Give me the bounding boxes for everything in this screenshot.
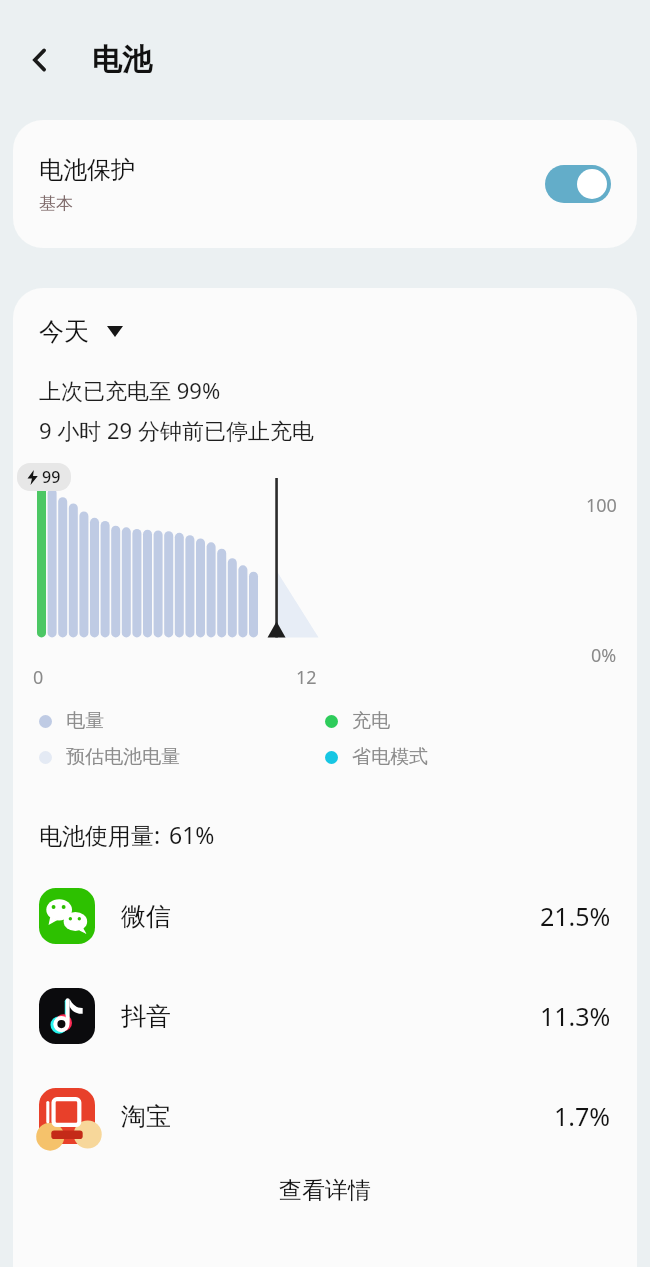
staticText: 11.3%: [540, 999, 611, 1033]
staticText: 上次已充电至 99%: [39, 375, 221, 405]
staticText: 充电: [352, 709, 390, 733]
staticText: 0: [33, 665, 44, 690]
staticText: 9 小时 29 分钟前已停止充电: [39, 415, 314, 445]
button[interactable]: 电池保护: [13, 120, 637, 248]
staticText: 省电模式: [352, 745, 428, 769]
button[interactable]: Back: [14, 34, 66, 86]
staticText: 12: [296, 665, 317, 690]
staticText: 预估电池电量: [66, 745, 180, 769]
staticText: 微信: [121, 901, 171, 932]
staticText: 100: [586, 493, 617, 518]
staticText: 21.5%: [540, 899, 611, 933]
staticText: 淘宝: [121, 1101, 171, 1132]
staticText: 99: [42, 466, 61, 488]
staticText: 抖音: [121, 1001, 171, 1032]
staticText: 基本: [39, 193, 73, 214]
button[interactable]: 查看详情: [279, 1176, 371, 1205]
button[interactable]: 淘宝: [13, 1066, 637, 1166]
button[interactable]: 微信: [13, 866, 637, 966]
button[interactable]: 今天: [29, 310, 133, 353]
staticText: 1.7%: [554, 1099, 611, 1133]
staticText: 电池使用量:: [39, 819, 161, 850]
staticText: 电量: [66, 709, 104, 733]
staticText: 今天: [39, 316, 89, 347]
staticText: 电池: [92, 41, 152, 79]
staticText: 61%: [169, 819, 215, 850]
staticText: 电池保护: [39, 155, 135, 185]
staticText: 0%: [591, 643, 617, 668]
button[interactable]: 抖音: [13, 966, 637, 1066]
button[interactable]: Battery protection toggle: [545, 165, 611, 203]
